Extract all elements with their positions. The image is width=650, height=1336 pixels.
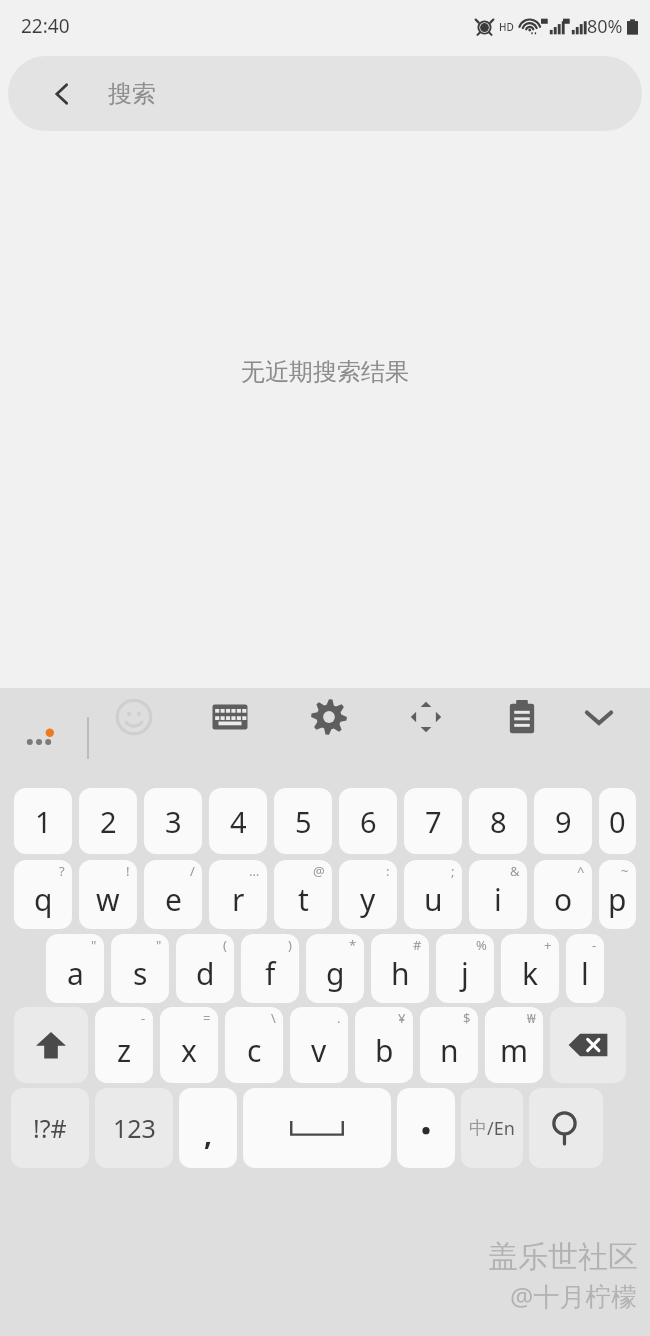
button[interactable]: 4: [209, 788, 267, 854]
button[interactable]: ;: [404, 860, 462, 929]
button[interactable]: Back: [8, 56, 642, 131]
button[interactable]: Move cursor: [397, 688, 455, 746]
staticText: ;: [451, 862, 455, 880]
staticText: q: [34, 879, 53, 920]
button[interactable]: Back: [40, 72, 84, 116]
button[interactable]: @: [274, 860, 332, 929]
staticText: ,: [204, 1115, 212, 1153]
button[interactable]: .: [290, 1007, 348, 1083]
button[interactable]: Clipboard: [493, 688, 551, 746]
staticText: 0: [609, 802, 626, 841]
staticText: v: [311, 1030, 327, 1071]
button[interactable]: -: [566, 934, 604, 1003]
staticText: &: [510, 862, 520, 880]
staticText: 5: [295, 802, 312, 841]
button[interactable]: 9: [534, 788, 592, 854]
staticText: i: [494, 879, 502, 920]
staticText: #: [413, 936, 422, 954]
staticText: !: [126, 862, 130, 880]
staticText: 无近期搜索结果: [241, 357, 409, 387]
staticText: 4: [230, 802, 247, 841]
staticText: .: [337, 1009, 341, 1027]
button[interactable]: Shift: [14, 1007, 88, 1083]
button[interactable]: Language switch: [461, 1088, 523, 1168]
button[interactable]: &: [469, 860, 527, 929]
button[interactable]: 3: [144, 788, 202, 854]
staticText: @: [313, 862, 325, 880]
staticText: @十月柠檬: [510, 1278, 638, 1314]
button[interactable]: Hide keyboard: [570, 688, 628, 746]
staticText: x: [181, 1030, 197, 1071]
staticText: /: [190, 862, 195, 880]
button[interactable]: ~: [599, 860, 636, 929]
button[interactable]: Settings: [300, 688, 358, 746]
staticText: 9: [555, 802, 572, 841]
staticText: m: [500, 1030, 529, 1071]
button[interactable]: Search: [529, 1088, 603, 1168]
button[interactable]: 8: [469, 788, 527, 854]
button[interactable]: ,: [179, 1088, 237, 1168]
staticText: p: [608, 879, 627, 920]
staticText: a: [67, 953, 84, 994]
button[interactable]: Space: [243, 1088, 391, 1168]
staticText: 22:40: [21, 13, 70, 39]
staticText: =: [203, 1009, 211, 1027]
staticText: k: [522, 953, 539, 994]
staticText: /En: [487, 1116, 515, 1141]
staticText: ₩: [527, 1009, 536, 1027]
button[interactable]: [397, 1088, 455, 1168]
button[interactable]: 0: [599, 788, 636, 854]
button[interactable]: ¥: [355, 1007, 413, 1083]
button[interactable]: Backspace: [550, 1007, 626, 1083]
staticText: j: [461, 953, 469, 994]
staticText: *: [349, 936, 357, 954]
button[interactable]: /: [144, 860, 202, 929]
button[interactable]: $: [420, 1007, 478, 1083]
button[interactable]: 7: [404, 788, 462, 854]
button[interactable]: 1: [14, 788, 72, 854]
staticText: -: [141, 1009, 146, 1027]
staticText: 中: [469, 1117, 487, 1140]
button[interactable]: -: [95, 1007, 153, 1083]
staticText: \: [271, 1009, 276, 1027]
staticText: ¥: [398, 1009, 406, 1027]
button[interactable]: ?: [14, 860, 72, 929]
staticText: ^: [577, 862, 585, 880]
button[interactable]: ": [46, 934, 104, 1003]
button[interactable]: \: [225, 1007, 283, 1083]
staticText: $: [463, 1009, 471, 1027]
staticText: h: [391, 953, 410, 994]
staticText: HD: [499, 20, 514, 34]
button[interactable]: ): [241, 934, 299, 1003]
button[interactable]: Emoji: [105, 688, 163, 746]
button[interactable]: 6: [339, 788, 397, 854]
staticText: o: [554, 879, 573, 920]
staticText: b: [375, 1030, 394, 1071]
staticText: u: [424, 879, 443, 920]
staticText: 盖乐世社区: [488, 1238, 638, 1276]
button[interactable]: More options: [12, 709, 70, 767]
staticText: d: [196, 953, 215, 994]
button[interactable]: !?#: [11, 1088, 89, 1168]
button[interactable]: %: [436, 934, 494, 1003]
button[interactable]: 123: [95, 1088, 173, 1168]
button[interactable]: 2: [79, 788, 137, 854]
button[interactable]: =: [160, 1007, 218, 1083]
button[interactable]: *: [306, 934, 364, 1003]
staticText: ": [91, 936, 97, 954]
button[interactable]: 5: [274, 788, 332, 854]
button[interactable]: +: [501, 934, 559, 1003]
staticText: 80%: [587, 14, 623, 39]
button[interactable]: (: [176, 934, 234, 1003]
staticText: 8: [490, 802, 507, 841]
button[interactable]: ": [111, 934, 169, 1003]
staticText: f: [265, 953, 276, 994]
button[interactable]: Keyboard: [201, 688, 259, 746]
button[interactable]: ₩: [485, 1007, 543, 1083]
button[interactable]: …: [209, 860, 267, 929]
staticText: l: [581, 953, 589, 994]
button[interactable]: ^: [534, 860, 592, 929]
button[interactable]: !: [79, 860, 137, 929]
button[interactable]: :: [339, 860, 397, 929]
button[interactable]: #: [371, 934, 429, 1003]
